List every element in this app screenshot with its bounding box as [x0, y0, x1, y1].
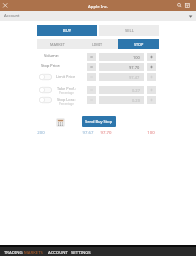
button[interactable]: Stop Loss: — [39, 97, 52, 103]
button[interactable]: Calculator — [57, 119, 64, 126]
staticText: Take Prof.: — [57, 86, 76, 91]
button[interactable]: Increase Stop Price: — [147, 63, 156, 71]
button[interactable]: MARKETS — [22, 245, 45, 256]
button[interactable]: 0.20 — [99, 96, 144, 104]
button[interactable]: SETTINGS — [69, 245, 92, 256]
button[interactable]: Decrease Stop Price: — [87, 63, 96, 71]
staticText: TRADING — [4, 249, 23, 255]
staticText: LIMIT — [92, 42, 103, 47]
button[interactable]: Take Prof.: — [39, 87, 52, 93]
staticText: Account — [4, 13, 20, 19]
button[interactable]: 0.27 — [99, 86, 144, 94]
staticText: Stop Loss: — [57, 97, 76, 102]
staticText: STOP — [134, 42, 144, 47]
button[interactable]: Limit Price — [39, 74, 52, 80]
button[interactable]: Increase Take Prof.: — [147, 86, 156, 94]
button[interactable]: MARKET — [37, 39, 77, 49]
staticText: 100 — [133, 55, 140, 60]
button[interactable]: LIMIT — [77, 39, 118, 49]
staticText: 200 — [26, 129, 56, 135]
button[interactable]: 97.70 — [99, 63, 144, 71]
staticText: 97.70 — [129, 65, 140, 70]
staticText: SELL — [125, 28, 134, 34]
button[interactable]: ACCOUNT — [46, 245, 69, 256]
staticText: Apple Inc. — [88, 3, 109, 9]
staticText: Percentage — [59, 102, 74, 106]
staticText: 0.27 — [132, 88, 140, 93]
button[interactable]: Increase Limit Price — [147, 73, 156, 81]
button[interactable]: SELL — [99, 25, 159, 36]
button[interactable]: 100 — [99, 53, 144, 61]
staticText: BUY — [63, 28, 71, 34]
staticText: 97.67 — [73, 129, 103, 135]
staticText: 97.70 — [91, 129, 121, 135]
button[interactable]: Account — [0, 11, 196, 21]
button[interactable]: Close — [0, 0, 11, 11]
button[interactable]: Decrease Volume: — [87, 53, 96, 61]
staticText: 97.47 — [129, 75, 140, 80]
staticText: ACCOUNT — [48, 249, 68, 255]
staticText: 0.20 — [132, 98, 140, 103]
staticText: MARKETS — [24, 249, 43, 255]
staticText: Send Buy Stop — [85, 119, 113, 124]
staticText: Percentage — [59, 91, 74, 95]
button[interactable]: Send Buy Stop — [82, 116, 116, 127]
staticText: SETTINGS — [71, 249, 91, 255]
button[interactable]: 97.47 — [99, 73, 144, 81]
button[interactable]: BUY — [37, 25, 97, 36]
button[interactable]: Increase Volume: — [147, 53, 156, 61]
button[interactable]: Increase Stop Loss: — [147, 96, 156, 104]
button[interactable]: More options — [182, 0, 193, 11]
staticText: Stop Price: — [41, 63, 61, 68]
button[interactable]: STOP — [118, 39, 159, 49]
staticText: Volume: — [44, 53, 59, 58]
staticText: Limit Price — [56, 74, 76, 79]
button[interactable]: Search — [174, 0, 185, 11]
staticText: MARKET — [50, 42, 65, 47]
staticText: 100 — [136, 129, 166, 135]
button[interactable]: TRADING — [2, 245, 25, 256]
